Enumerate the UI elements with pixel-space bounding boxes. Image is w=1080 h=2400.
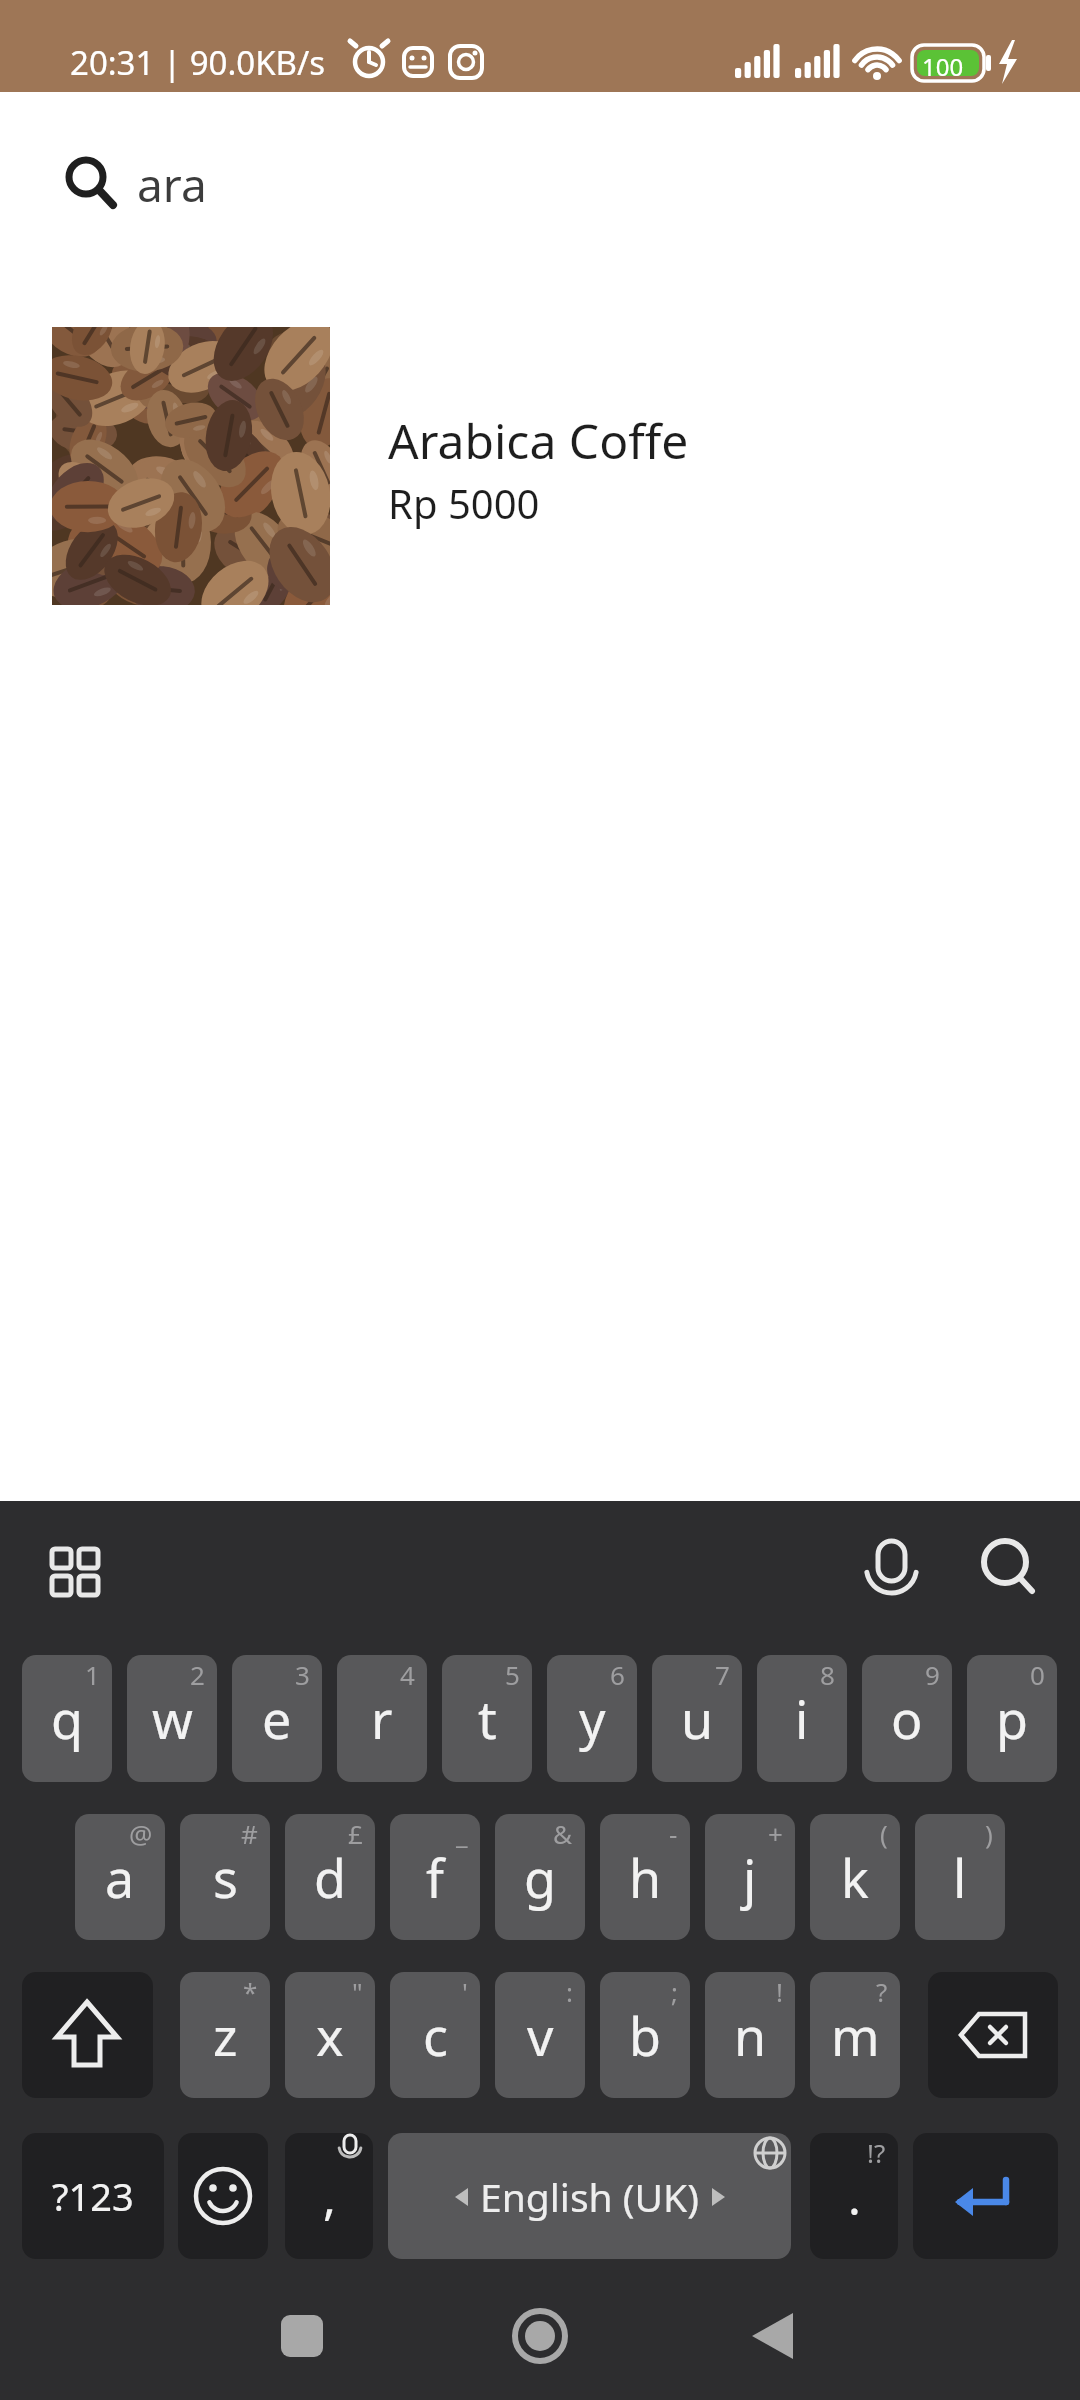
- button[interactable]: x: [285, 1972, 375, 2098]
- staticText: j: [743, 1842, 757, 1913]
- staticText: ara: [137, 153, 207, 216]
- staticText: v: [527, 2000, 554, 2071]
- staticText: ;: [671, 1974, 678, 2009]
- staticText: p: [996, 1683, 1028, 1754]
- staticText: s: [213, 1842, 238, 1913]
- button[interactable]: [36, 1534, 116, 1614]
- staticText: 5: [505, 1657, 520, 1692]
- staticText: .: [848, 2164, 861, 2229]
- button[interactable]: English (UK): [388, 2133, 791, 2259]
- button[interactable]: o: [862, 1655, 952, 1782]
- staticText: y: [579, 1683, 606, 1754]
- staticText: o: [891, 1683, 923, 1754]
- staticText: (: [880, 1816, 888, 1851]
- button[interactable]: y: [547, 1655, 637, 1782]
- staticText: English (UK): [480, 2170, 699, 2223]
- staticText: ?123: [52, 2170, 134, 2222]
- button[interactable]: d: [285, 1814, 375, 1940]
- button[interactable]: z: [180, 1972, 270, 2098]
- staticText: f: [426, 1842, 444, 1913]
- staticText: !: [776, 1974, 783, 2009]
- staticText: @: [129, 1816, 153, 1851]
- staticText: z: [213, 2000, 238, 2071]
- staticText: k: [841, 1842, 869, 1913]
- button[interactable]: i: [757, 1655, 847, 1782]
- staticText: 8: [820, 1657, 835, 1692]
- staticText: ": [352, 1974, 363, 2009]
- button[interactable]: [726, 2296, 826, 2378]
- button[interactable]: [490, 2296, 590, 2378]
- button[interactable]: p: [967, 1655, 1057, 1782]
- staticText: 3: [295, 1657, 310, 1692]
- staticText: ': [462, 1974, 468, 2009]
- staticText: a: [105, 1842, 135, 1913]
- button[interactable]: [40, 320, 1040, 612]
- staticText: 4: [400, 1657, 415, 1692]
- button[interactable]: k: [810, 1814, 900, 1940]
- staticText: Arabica Coffe: [388, 408, 689, 473]
- staticText: 6: [610, 1657, 625, 1692]
- button[interactable]: r: [337, 1655, 427, 1782]
- staticText: 100: [922, 50, 964, 83]
- button[interactable]: [928, 1972, 1058, 2098]
- button[interactable]: .: [810, 2133, 898, 2259]
- staticText: m: [831, 2000, 880, 2071]
- staticText: 9: [925, 1657, 940, 1692]
- button[interactable]: a: [75, 1814, 165, 1940]
- staticText: w: [152, 1683, 193, 1754]
- staticText: ?: [876, 1974, 888, 2009]
- button[interactable]: b: [600, 1972, 690, 2098]
- staticText: n: [734, 2000, 767, 2071]
- staticText: &: [553, 1816, 573, 1851]
- staticText: r: [371, 1683, 393, 1754]
- staticText: q: [51, 1683, 83, 1754]
- staticText: Rp 5000: [388, 476, 540, 530]
- staticText: c: [423, 2000, 448, 2071]
- staticText: g: [524, 1842, 556, 1913]
- staticText: 1: [85, 1657, 100, 1692]
- button[interactable]: e: [232, 1655, 322, 1782]
- button[interactable]: [913, 2133, 1058, 2259]
- staticText: u: [681, 1683, 714, 1754]
- button[interactable]: g: [495, 1814, 585, 1940]
- staticText: ,: [323, 2164, 336, 2229]
- staticText: ): [985, 1816, 993, 1851]
- button[interactable]: w: [127, 1655, 217, 1782]
- staticText: -: [669, 1816, 678, 1851]
- staticText: e: [262, 1683, 292, 1754]
- staticText: £: [348, 1816, 363, 1851]
- staticText: h: [629, 1842, 662, 1913]
- button[interactable]: v: [495, 1972, 585, 2098]
- button[interactable]: [40, 140, 640, 220]
- staticText: i: [795, 1683, 809, 1754]
- button[interactable]: ?123: [22, 2133, 164, 2259]
- button[interactable]: j: [705, 1814, 795, 1940]
- staticText: d: [314, 1842, 346, 1913]
- staticText: :: [566, 1974, 573, 2009]
- staticText: *: [243, 1974, 258, 2009]
- button[interactable]: l: [915, 1814, 1005, 1940]
- staticText: l: [953, 1842, 967, 1913]
- button[interactable]: [852, 1534, 932, 1614]
- staticText: b: [629, 2000, 661, 2071]
- staticText: !?: [867, 2135, 886, 2170]
- button[interactable]: q: [22, 1655, 112, 1782]
- button[interactable]: c: [390, 1972, 480, 2098]
- staticText: 20:31 | 90.0KB/s: [70, 40, 326, 85]
- staticText: t: [478, 1683, 497, 1754]
- button[interactable]: u: [652, 1655, 742, 1782]
- button[interactable]: [22, 1972, 153, 2098]
- button[interactable]: [252, 2296, 352, 2378]
- button[interactable]: m: [810, 1972, 900, 2098]
- button[interactable]: s: [180, 1814, 270, 1940]
- staticText: 7: [715, 1657, 730, 1692]
- button[interactable]: ,: [285, 2133, 373, 2259]
- staticText: +: [768, 1816, 783, 1851]
- button[interactable]: t: [442, 1655, 532, 1782]
- button[interactable]: n: [705, 1972, 795, 2098]
- button[interactable]: [178, 2133, 268, 2259]
- staticText: #: [241, 1816, 258, 1851]
- button[interactable]: f: [390, 1814, 480, 1940]
- button[interactable]: [966, 1534, 1046, 1614]
- button[interactable]: h: [600, 1814, 690, 1940]
